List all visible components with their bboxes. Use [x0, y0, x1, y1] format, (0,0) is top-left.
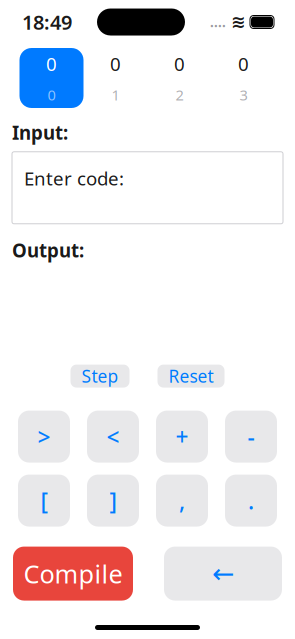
staticText: 0	[110, 51, 121, 76]
staticText: .	[248, 485, 254, 516]
button[interactable]: +	[156, 411, 208, 463]
button[interactable]: >	[18, 411, 70, 463]
staticText: 18:49	[22, 9, 72, 35]
staticText: -	[247, 421, 254, 452]
staticText: ,	[179, 485, 185, 516]
staticText: Reset	[168, 365, 213, 388]
button[interactable]: ,	[156, 475, 208, 527]
staticText: 1	[111, 85, 119, 105]
button[interactable]: 0	[83, 48, 147, 108]
staticText: Compile	[23, 557, 122, 590]
staticText: 0	[238, 51, 249, 76]
staticText: ....	[210, 13, 226, 31]
button[interactable]: 0	[147, 48, 211, 108]
button[interactable]: Reset	[157, 365, 224, 388]
staticText: ←	[212, 558, 234, 589]
staticText: <	[106, 421, 119, 452]
staticText: Step	[81, 365, 118, 388]
staticText: 3	[239, 85, 247, 105]
button[interactable]: Step	[70, 365, 129, 388]
staticText: 0	[46, 51, 57, 76]
staticText: ≋	[231, 12, 246, 32]
staticText: 0	[47, 85, 55, 105]
button[interactable]: Backspace	[164, 547, 282, 601]
button[interactable]: [	[18, 475, 70, 527]
staticText: ]	[109, 485, 116, 516]
staticText: Input:	[12, 120, 68, 145]
button[interactable]: 0	[211, 48, 275, 108]
button[interactable]: ]	[87, 475, 139, 527]
staticText: 0	[174, 51, 185, 76]
button[interactable]: Compile	[13, 547, 133, 601]
staticText: Enter code:	[24, 166, 124, 191]
staticText: 2	[175, 85, 183, 105]
button[interactable]: <	[87, 411, 139, 463]
staticText: Output:	[12, 238, 84, 263]
staticText: >	[37, 421, 50, 452]
staticText: [	[40, 485, 47, 516]
button[interactable]: .	[225, 475, 277, 527]
button[interactable]: -	[225, 411, 277, 463]
staticText: +	[175, 421, 188, 452]
button[interactable]: 0	[19, 48, 83, 108]
